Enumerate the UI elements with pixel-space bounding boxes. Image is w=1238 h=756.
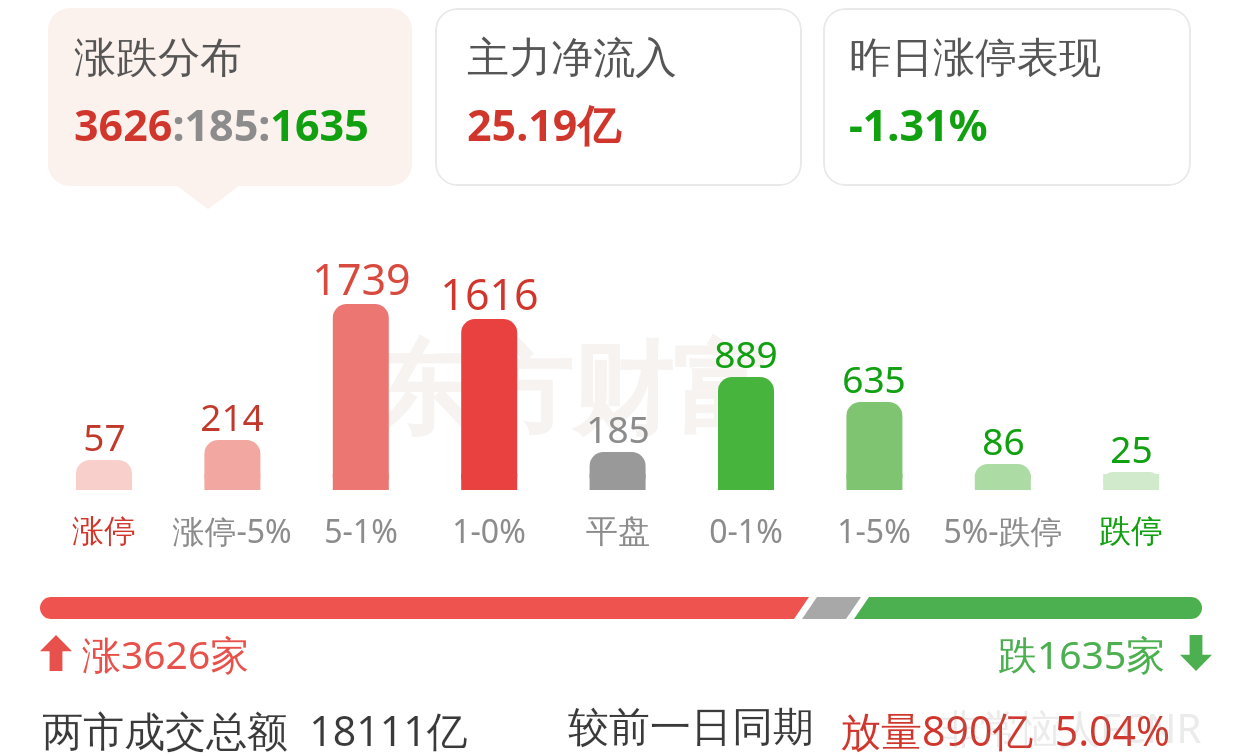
button[interactable]: 跌1635家 bbox=[998, 626, 1212, 680]
staticText: 涨3626家 bbox=[82, 627, 250, 680]
staticText: 跌1635家 bbox=[998, 627, 1166, 680]
staticText: 非常恼人FCNR bbox=[940, 700, 1202, 755]
button[interactable]: 主力净流入 bbox=[435, 8, 802, 186]
staticText: 889 bbox=[714, 328, 778, 375]
button[interactable]: 昨日涨停表现 bbox=[823, 8, 1191, 186]
staticText: 3626:185:1635 bbox=[74, 95, 369, 154]
staticText: -1.31% bbox=[849, 95, 988, 154]
other: Advancing bbox=[40, 635, 72, 671]
staticText: 昨日涨停表现 bbox=[849, 32, 1101, 85]
staticText: 5-1% bbox=[324, 509, 398, 553]
staticText: 跌停 bbox=[1099, 511, 1163, 551]
staticText: 57 bbox=[83, 411, 126, 458]
staticText: 东方财富 bbox=[372, 328, 772, 454]
staticText: 25.19亿 bbox=[467, 95, 621, 154]
staticText: 25 bbox=[1110, 423, 1153, 470]
staticText: 涨跌分布 bbox=[74, 32, 242, 85]
staticText: 主力净流入 bbox=[467, 32, 677, 85]
staticText: 635 bbox=[842, 353, 906, 400]
staticText: 185 bbox=[586, 403, 650, 450]
staticText: 两市成交总额 18111亿 bbox=[42, 702, 468, 756]
button[interactable]: 涨跌分布 bbox=[48, 8, 412, 186]
staticText: 1-0% bbox=[452, 509, 526, 553]
staticText: 较前一日同期 bbox=[568, 702, 814, 754]
staticText: 1739 bbox=[312, 249, 411, 302]
staticText: 1-5% bbox=[837, 509, 911, 553]
staticText: 放量890亿 5.04% bbox=[840, 702, 1171, 756]
button[interactable] bbox=[40, 597, 1202, 619]
staticText: 0-1% bbox=[709, 509, 783, 553]
staticText: 平盘 bbox=[586, 511, 650, 551]
other: Declining bbox=[1180, 635, 1212, 671]
staticText: 涨停-5% bbox=[172, 509, 292, 553]
staticText: 86 bbox=[982, 415, 1025, 462]
button[interactable]: Advancing bbox=[40, 626, 250, 680]
staticText: 1616 bbox=[440, 264, 539, 317]
staticText: 5%-跌停 bbox=[943, 509, 1063, 553]
staticText: 涨停 bbox=[72, 511, 136, 551]
staticText: 214 bbox=[200, 391, 264, 438]
